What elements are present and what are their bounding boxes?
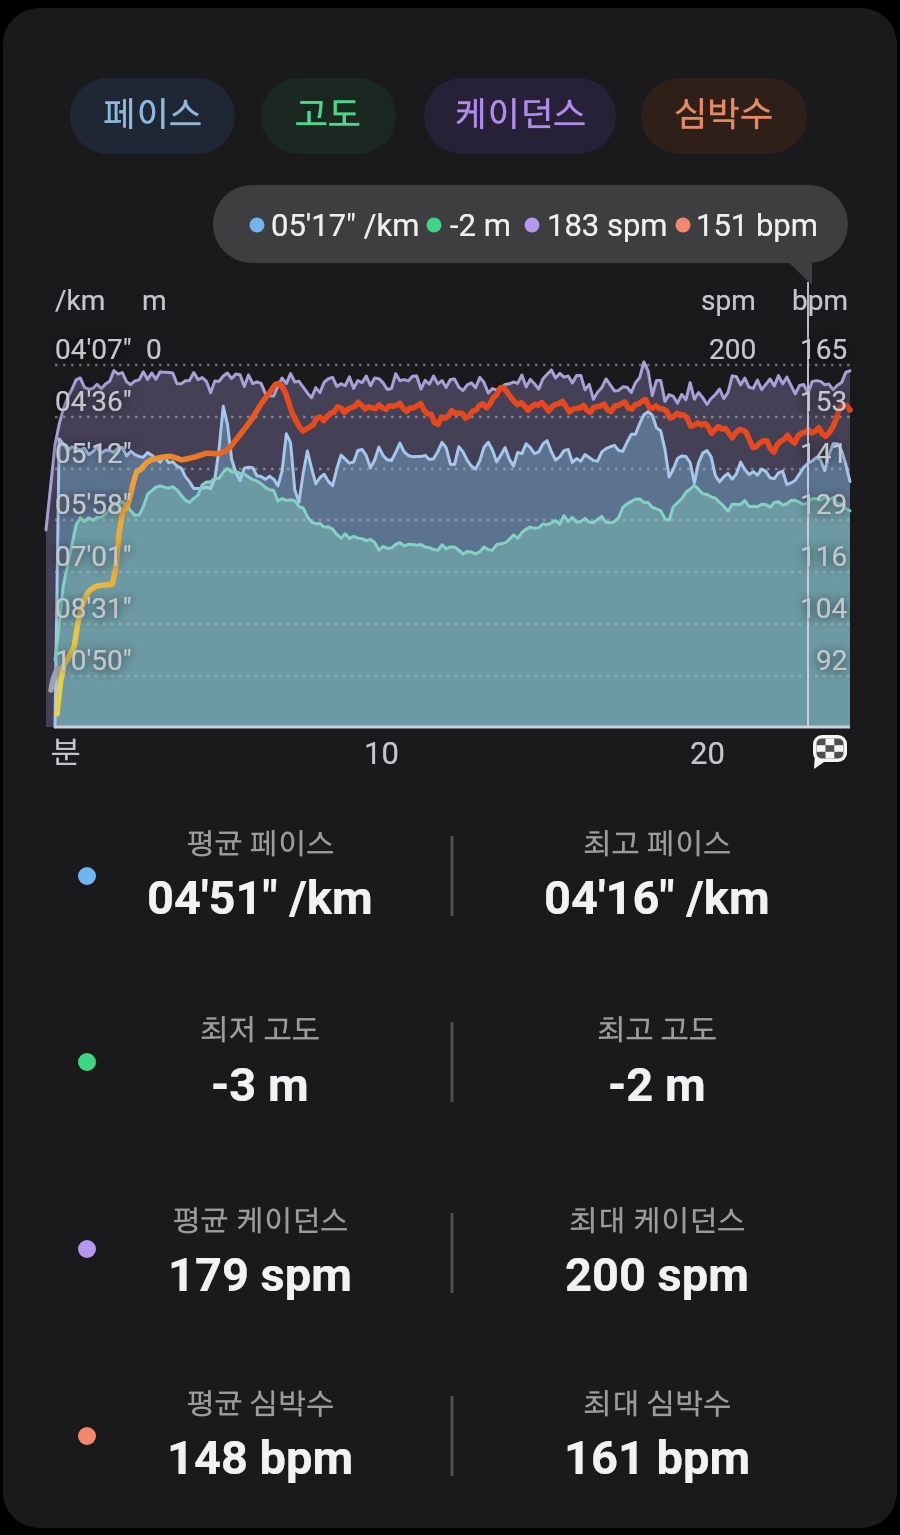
staticText: 161 bpm (564, 1430, 751, 1485)
staticText: 평균 케이던스 (172, 1208, 349, 1237)
staticText: /km (55, 284, 106, 317)
button[interactable] (213, 185, 848, 263)
staticText: 92 (816, 644, 848, 677)
staticText: 04'16" /km (544, 870, 770, 925)
staticText: 05'58" (55, 488, 132, 521)
staticText: 151 bpm (696, 207, 818, 243)
staticText: 165 (800, 333, 848, 366)
staticText: 0 (146, 333, 162, 366)
staticText: 183 spm (547, 207, 668, 243)
staticText: -2 m (608, 1057, 706, 1112)
staticText: 최저 고도 (200, 1017, 320, 1046)
staticText: 최대 심박수 (583, 1391, 732, 1420)
staticText: 116 (800, 540, 848, 573)
staticText: 104 (800, 592, 848, 625)
staticText: 179 spm (168, 1247, 352, 1302)
staticText: 평균 심박수 (186, 1391, 335, 1420)
staticText: 최고 고도 (597, 1017, 717, 1046)
button[interactable]: 심박수 (641, 78, 807, 154)
staticText: -3 m (211, 1057, 309, 1112)
staticText: 04'51" /km (147, 870, 373, 925)
staticText: 최고 페이스 (583, 831, 732, 860)
staticText: 200 (709, 333, 757, 366)
staticText: 08'31" (55, 592, 132, 625)
button[interactable]: 케이던스 (424, 78, 616, 154)
staticText: 고도 (295, 99, 362, 133)
staticText: 04'07" (55, 333, 132, 366)
staticText: 129 (800, 488, 848, 521)
staticText: spm (701, 284, 756, 317)
staticText: 05'17" /km (271, 207, 420, 243)
staticText: 04'36" (55, 385, 132, 418)
staticText: 20 (690, 735, 725, 771)
staticText: 200 spm (565, 1247, 749, 1302)
staticText: -2 m (450, 207, 511, 243)
staticText: 141 (800, 437, 848, 470)
staticText: 심박수 (674, 99, 774, 133)
staticText: 10'50" (55, 644, 132, 677)
staticText: m (142, 284, 167, 317)
button[interactable]: 페이스 (70, 78, 235, 154)
staticText: 평균 페이스 (186, 831, 335, 860)
staticText: 05'12" (55, 437, 132, 470)
staticText: 10 (364, 735, 399, 771)
staticText: 분 (51, 738, 81, 769)
button[interactable]: 고도 (261, 78, 396, 154)
staticText: bpm (792, 284, 848, 317)
staticText: 148 bpm (167, 1430, 354, 1485)
staticText: 케이던스 (454, 99, 587, 133)
staticText: 페이스 (103, 99, 203, 133)
staticText: 07'01" (55, 540, 132, 573)
staticText: 최대 케이던스 (569, 1208, 746, 1237)
staticText: 153 (800, 385, 848, 418)
